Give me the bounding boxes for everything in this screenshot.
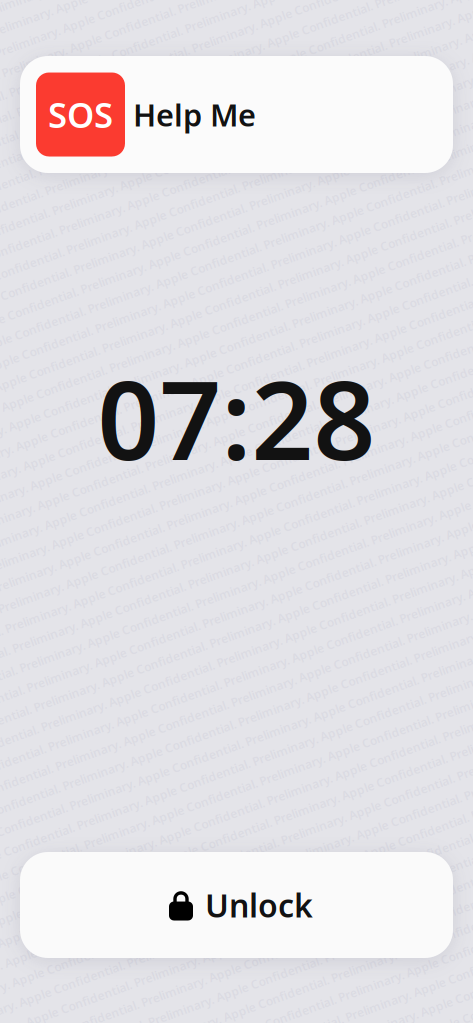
staticText: Unlock (205, 884, 313, 926)
staticText: Apple Confidential. Preliminary. Apple C… (0, 53, 473, 69)
button[interactable]: Unlock (20, 852, 453, 958)
staticText: Apple Confidential. Preliminary. Apple C… (0, 95, 473, 111)
staticText: Apple Confidential. Preliminary. Apple C… (0, 912, 473, 928)
staticText: Apple Confidential. Preliminary. Apple C… (0, 954, 473, 969)
staticText: Apple Confidential. Preliminary. Apple C… (0, 451, 473, 467)
staticText: Apple Confidential. Preliminary. Apple C… (0, 179, 473, 195)
staticText: SOS (48, 91, 113, 137)
staticText: Apple Confidential. Preliminary. Apple C… (0, 849, 473, 865)
staticText: Apple Confidential. Preliminary. Apple C… (0, 158, 473, 174)
staticText: Apple Confidential. Preliminary. Apple C… (0, 388, 473, 404)
staticText: 07:28 (97, 346, 375, 490)
staticText: Apple Confidential. Preliminary. Apple C… (0, 367, 473, 383)
staticText: Apple Confidential. Preliminary. Apple C… (0, 430, 473, 446)
staticText: Apple Confidential. Preliminary. Apple C… (0, 74, 473, 90)
button[interactable]: SOS (20, 56, 453, 173)
staticText: Apple Confidential. Preliminary. Apple C… (0, 409, 473, 425)
staticText: Apple Confidential. Preliminary. Apple C… (0, 891, 473, 907)
staticText: Apple Confidential. Preliminary. Apple C… (0, 933, 473, 949)
staticText: Apple Confidential. Preliminary. Apple C… (0, 116, 473, 132)
staticText: Apple Confidential. Preliminary. Apple C… (0, 870, 473, 886)
staticText: Apple Confidential. Preliminary. Apple C… (0, 137, 473, 153)
staticText: Help Me (133, 94, 256, 135)
